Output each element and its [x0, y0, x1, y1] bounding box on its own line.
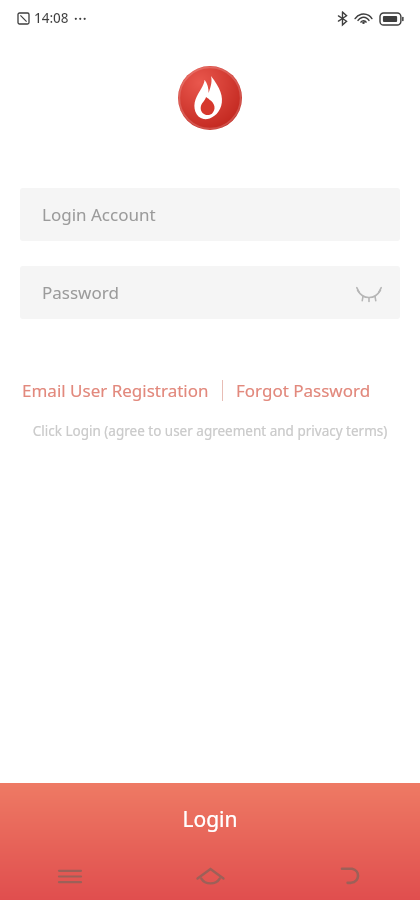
- button[interactable]: Recents: [0, 852, 140, 900]
- staticText: Login Account: [42, 203, 156, 226]
- staticText: Forgot Password: [236, 379, 371, 402]
- staticText: Password: [42, 281, 119, 304]
- button[interactable]: Login: [0, 783, 420, 900]
- button[interactable]: Password: [20, 266, 400, 319]
- button[interactable]: Show password: [350, 274, 388, 312]
- button[interactable]: Home: [140, 852, 280, 900]
- staticText: Email User Registration: [22, 379, 209, 402]
- button[interactable]: Login Account: [20, 188, 400, 241]
- button[interactable]: Back: [280, 852, 420, 900]
- staticText: Login: [0, 805, 420, 834]
- staticText: 14:08: [34, 9, 69, 27]
- button[interactable]: Email User Registration: [22, 379, 209, 402]
- button[interactable]: Forgot Password: [236, 379, 371, 402]
- staticText: Click Login (agree to user agreement and…: [0, 422, 420, 440]
